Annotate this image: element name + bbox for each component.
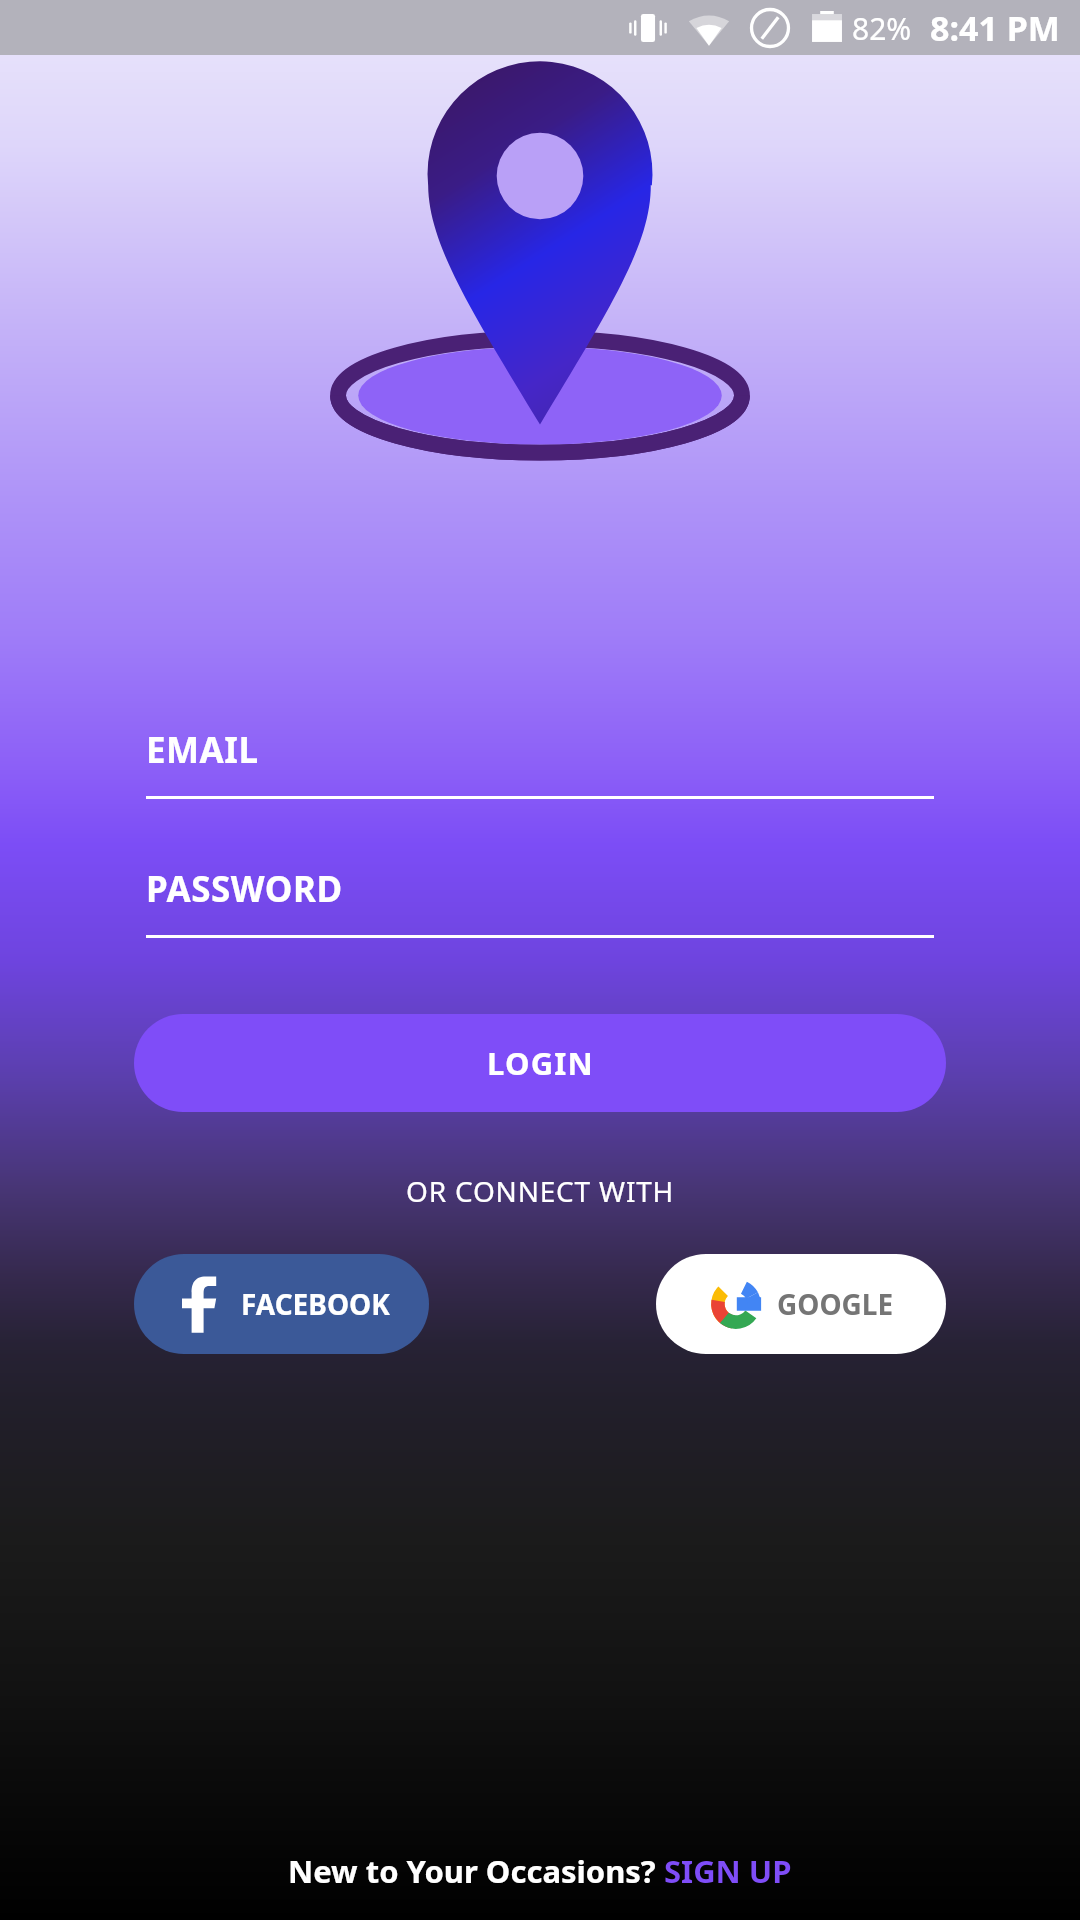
staticText: 82% [852, 8, 912, 49]
other: Vibrate [626, 6, 670, 50]
staticText: 8:41 PM [930, 5, 1060, 51]
button[interactable]: PASSWORD [146, 865, 934, 938]
staticText: LOGIN [487, 1042, 594, 1084]
staticText: FACEBOOK [241, 1285, 390, 1323]
button[interactable]: SIGN UP [664, 1850, 792, 1892]
button[interactable]: EMAIL [146, 726, 934, 799]
button[interactable]: FACEBOOK [134, 1254, 429, 1354]
button[interactable]: LOGIN [134, 1014, 946, 1112]
other: Battery [810, 11, 844, 45]
staticText: PASSWORD [146, 865, 343, 913]
staticText: OR CONNECT WITH [406, 1172, 675, 1210]
other: Wi-Fi [688, 7, 730, 49]
staticText: GOOGLE [777, 1285, 894, 1323]
staticText: SIGN UP [664, 1850, 792, 1892]
staticText: New to Your Occasions? [288, 1850, 664, 1892]
staticText: EMAIL [146, 726, 259, 774]
other: Do not disturb [748, 6, 792, 50]
button[interactable]: GOOGLE [656, 1254, 946, 1354]
